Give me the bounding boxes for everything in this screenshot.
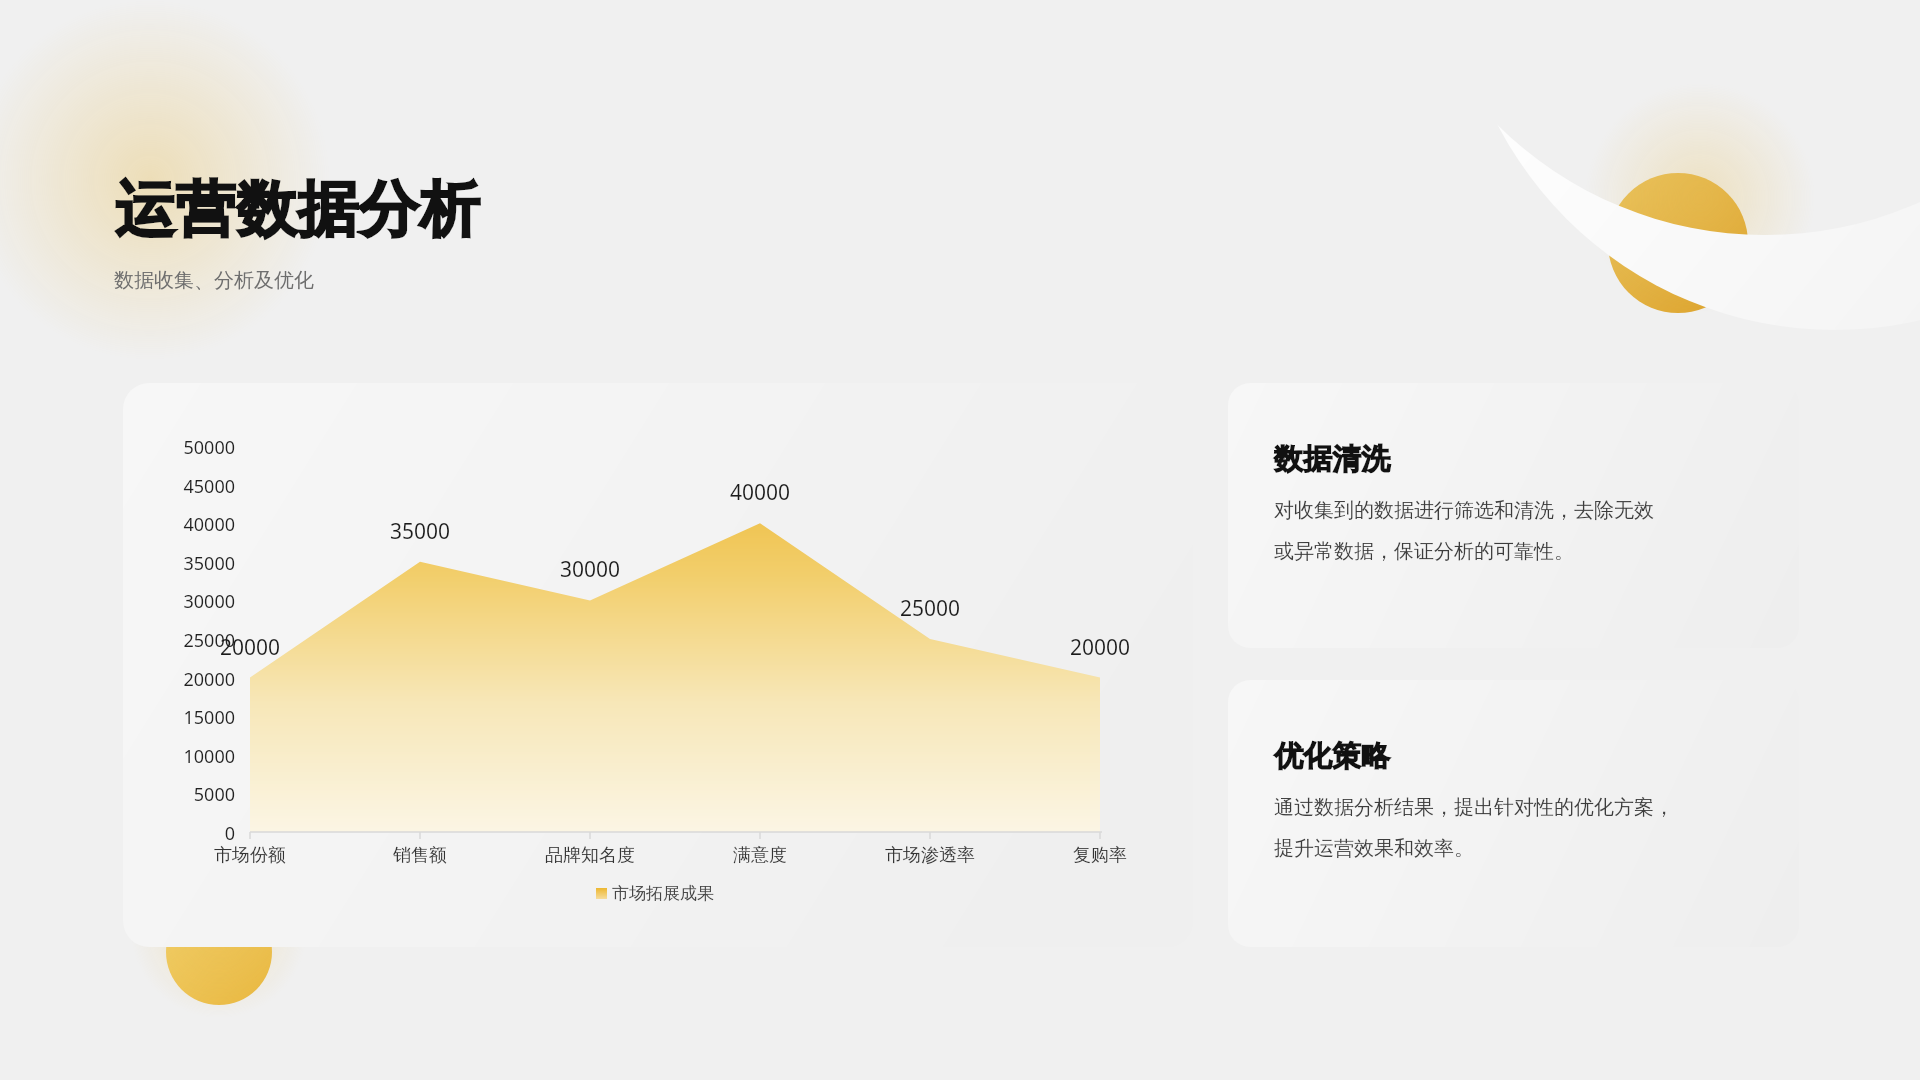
staticText: 45000 — [135, 474, 235, 499]
staticText: 35000 — [360, 517, 480, 546]
staticText: 15000 — [135, 705, 235, 730]
staticText: 通过数据分析结果，提出针对性的优化方案， — [1274, 795, 1674, 820]
staticText: 对收集到的数据进行筛选和清洗，去除无效 — [1274, 498, 1654, 523]
staticText: 提升运营效果和效率。 — [1274, 836, 1474, 861]
staticText: 0 — [135, 821, 235, 846]
staticText: 销售额 — [345, 844, 495, 867]
staticText: 数据清洗 — [1274, 441, 1390, 478]
staticText: 市场拓展成果 — [612, 883, 714, 904]
button[interactable]: 市场拓展成果 — [596, 883, 714, 904]
staticText: 数据收集、分析及优化 — [114, 268, 314, 293]
staticText: 复购率 — [1025, 844, 1175, 867]
staticText: 20000 — [135, 667, 235, 692]
staticText: 35000 — [135, 551, 235, 576]
staticText: 30000 — [135, 589, 235, 614]
staticText: 或异常数据，保证分析的可靠性。 — [1274, 539, 1574, 564]
staticText: 市场份额 — [175, 844, 325, 867]
staticText: 优化策略 — [1274, 738, 1390, 775]
staticText: 市场渗透率 — [855, 844, 1005, 867]
staticText: 50000 — [135, 435, 235, 460]
staticText: 品牌知名度 — [515, 844, 665, 867]
staticText: 20000 — [190, 633, 310, 662]
staticText: 25000 — [870, 594, 990, 623]
staticText: 40000 — [135, 512, 235, 537]
staticText: 10000 — [135, 744, 235, 769]
staticText: 5000 — [135, 782, 235, 807]
button[interactable]: 数据清洗 — [1228, 383, 1799, 648]
staticText: 40000 — [700, 478, 820, 507]
staticText: 25000 — [135, 628, 235, 653]
staticText: 运营数据分析 — [114, 172, 480, 248]
staticText: 20000 — [1040, 633, 1160, 662]
staticText: 满意度 — [685, 844, 835, 867]
other: Decorative background — [0, 0, 1920, 1080]
button[interactable]: 50000 — [123, 383, 1193, 947]
button[interactable]: 优化策略 — [1228, 680, 1799, 947]
staticText: 30000 — [530, 555, 650, 584]
